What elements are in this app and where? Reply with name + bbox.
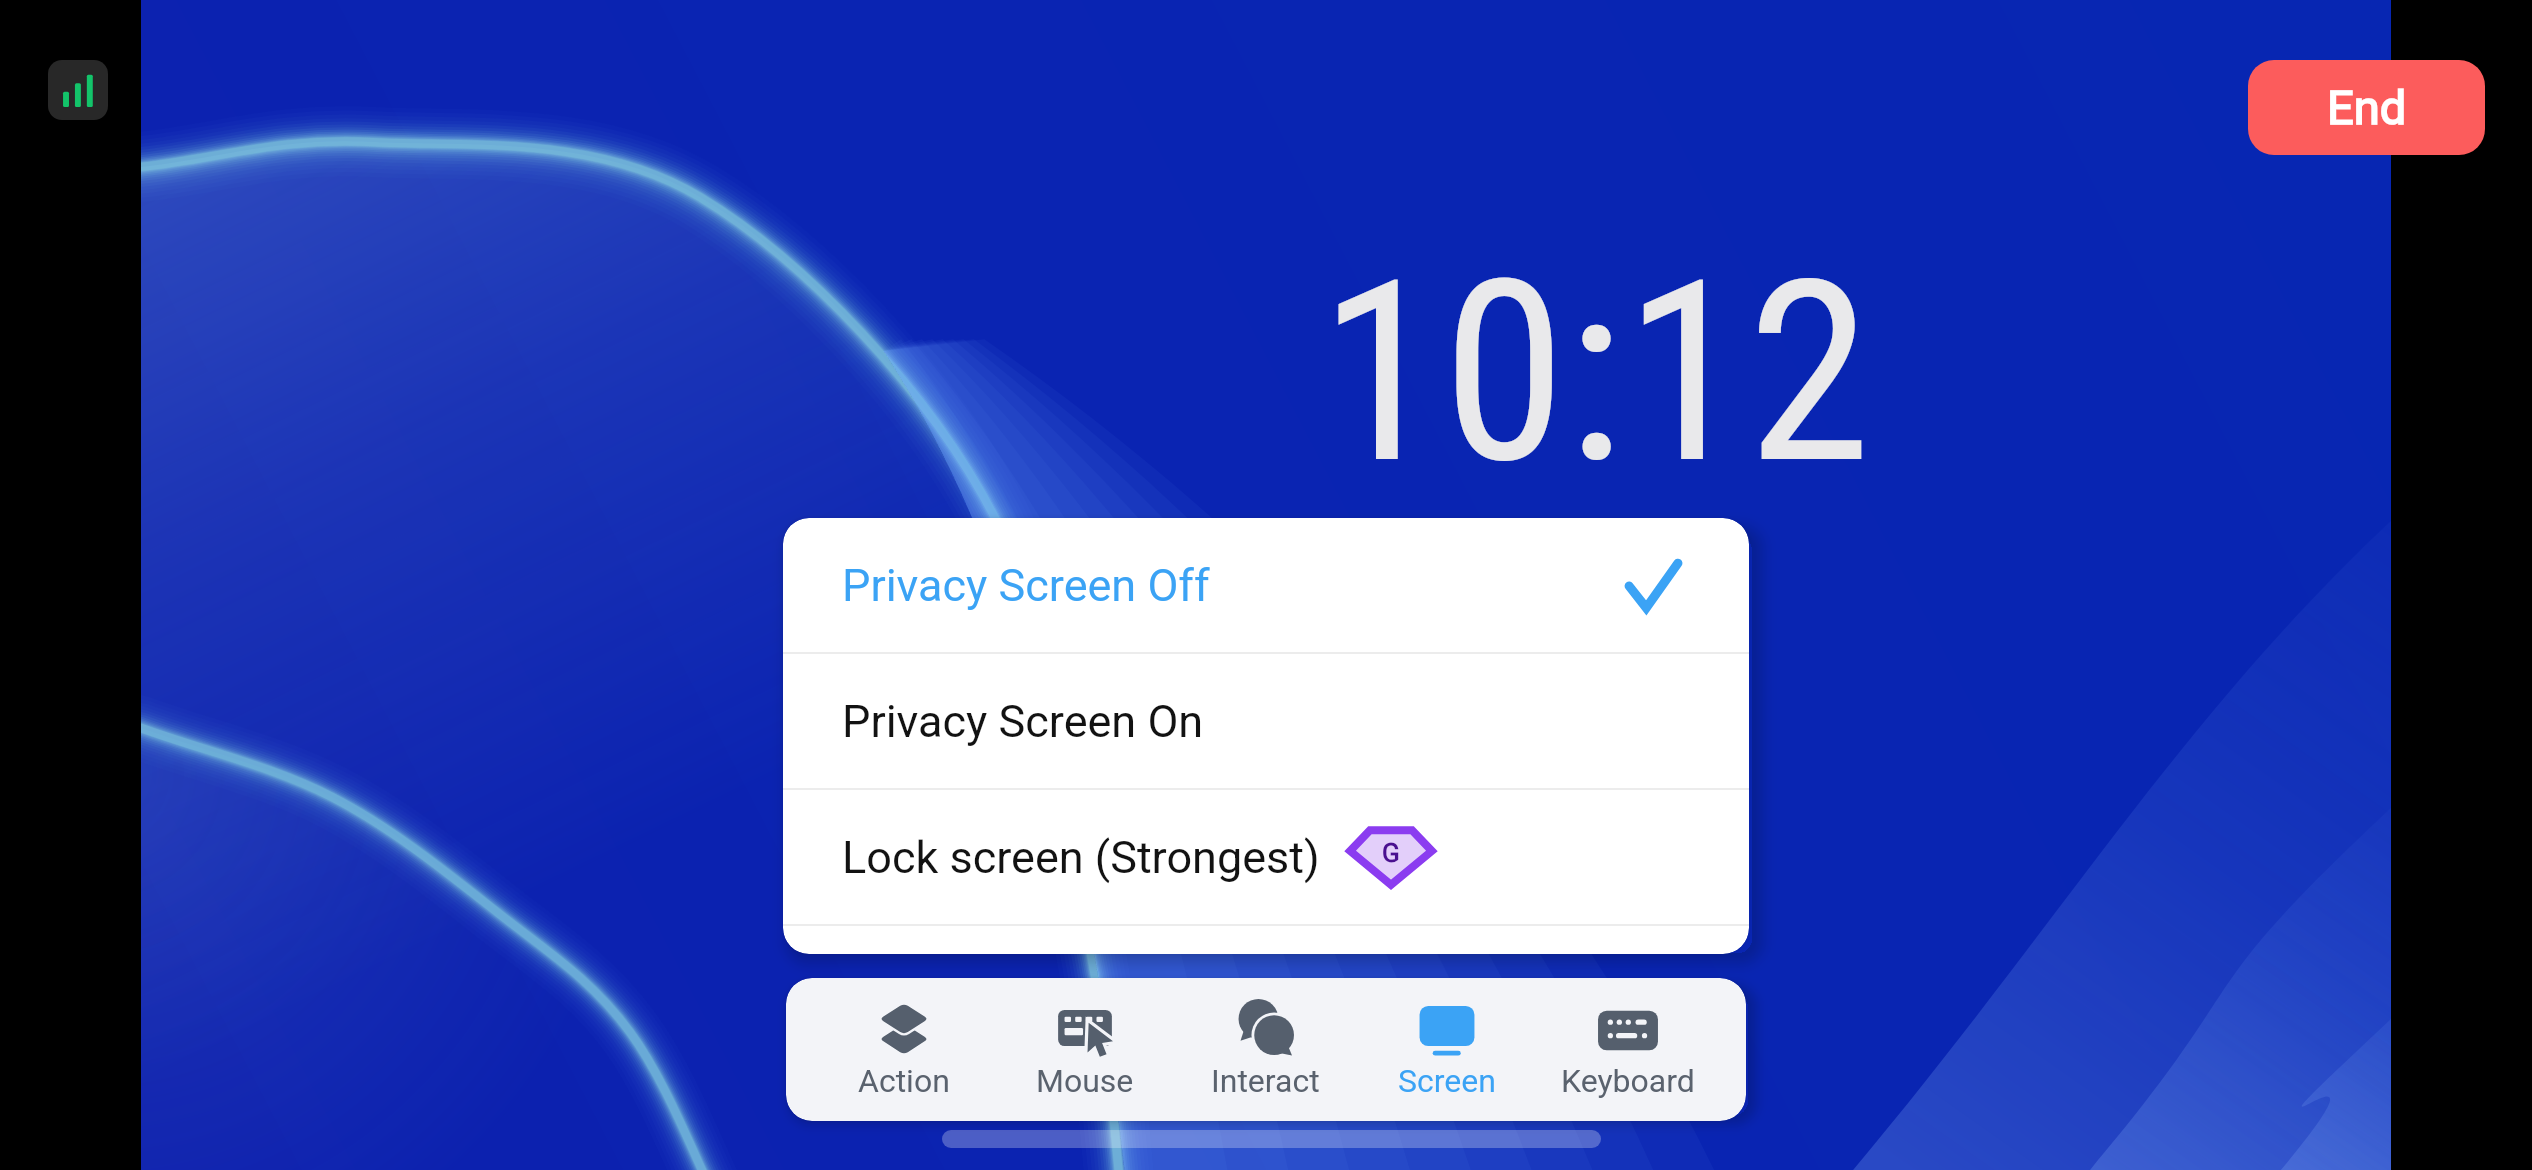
button[interactable]: Privacy Screen On — [783, 654, 1749, 788]
button[interactable]: Keyboard — [1537, 978, 1718, 1121]
staticText: 10:12 — [1319, 227, 1872, 520]
staticText: Screen — [1398, 1062, 1496, 1100]
staticText: Mouse — [1036, 1062, 1134, 1100]
button[interactable]: Screen — [1356, 978, 1537, 1121]
button[interactable]: Interact — [1175, 978, 1356, 1121]
staticText: Privacy Screen On — [842, 695, 1204, 748]
staticText: Action — [858, 1062, 950, 1100]
button[interactable]: Action — [814, 978, 994, 1121]
staticText: Interact — [1211, 1062, 1320, 1100]
staticText: G — [1382, 838, 1400, 868]
button[interactable]: End — [2248, 60, 2485, 155]
staticText: Privacy Screen Off — [842, 559, 1210, 612]
staticText: End — [2327, 80, 2407, 135]
button[interactable]: Connection quality — [48, 60, 108, 120]
staticText: Keyboard — [1561, 1062, 1695, 1100]
button[interactable]: Privacy Screen Off — [783, 518, 1749, 652]
staticText: Lock screen (Strongest) — [842, 831, 1320, 884]
button[interactable]: Mouse — [994, 978, 1175, 1121]
button[interactable]: Lock screen (Strongest) — [783, 790, 1749, 924]
